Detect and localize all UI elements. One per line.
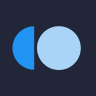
group: App logo: [0, 0, 96, 96]
